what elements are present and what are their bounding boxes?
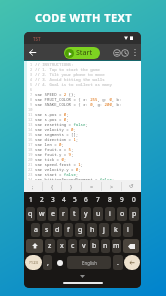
button[interactable]: Debug: [110, 46, 123, 59]
button[interactable]: 8: [104, 192, 116, 206]
button[interactable]: i: [105, 207, 115, 221]
button[interactable]: u: [93, 207, 103, 221]
staticText: n: [103, 241, 108, 251]
staticText: b: [92, 241, 97, 251]
staticText: 8: [108, 195, 112, 204]
staticText: 6: [84, 195, 88, 204]
staticText: 5: [30, 82, 33, 87]
button[interactable]: o: [117, 207, 127, 221]
button[interactable]: Backspace: [123, 239, 139, 253]
button[interactable]: h: [87, 223, 97, 237]
staticText: 22: [28, 167, 33, 172]
button[interactable]: m: [112, 239, 121, 253]
button[interactable]: 4: [58, 192, 69, 206]
button[interactable]: 9: [116, 192, 128, 206]
button[interactable]: x: [57, 239, 66, 253]
button[interactable]: ;: [24, 180, 42, 192]
button[interactable]: 1: [25, 192, 36, 206]
button[interactable]: l: [123, 223, 133, 237]
button[interactable]: s: [42, 223, 51, 237]
staticText: 18: [28, 147, 33, 152]
button[interactable]: w: [37, 207, 46, 221]
staticText: ,: [47, 258, 49, 268]
staticText: // 1. Tap to start the game: [35, 67, 100, 72]
staticText: 5: [73, 195, 77, 204]
button[interactable]: Shift: [26, 239, 43, 253]
button[interactable]: ↺: [122, 180, 141, 192]
button[interactable]: c: [68, 239, 77, 253]
button[interactable]: English: [67, 256, 111, 269]
staticText: >: [110, 183, 114, 190]
staticText: var segments = [];: [35, 132, 79, 137]
button[interactable]: t: [70, 207, 79, 221]
staticText: 14: [28, 127, 33, 132]
button[interactable]: q: [26, 207, 35, 221]
staticText: var start = false;: [35, 172, 79, 177]
button[interactable]: >: [102, 180, 121, 192]
button[interactable]: a: [31, 223, 40, 237]
button[interactable]: 2: [36, 192, 47, 206]
staticText: 1: [30, 62, 33, 67]
staticText: var velocity.y = 0;: [35, 167, 81, 172]
button[interactable]: b: [90, 239, 99, 253]
staticText: var FRUIT_COLOR = { r: 255, g: 0, b:: [35, 97, 122, 102]
staticText: 3: [30, 72, 33, 77]
staticText: // 3. Avoid hitting the walls: [35, 77, 105, 82]
staticText: 7: [96, 195, 100, 204]
button[interactable]: .: [113, 255, 123, 270]
button[interactable]: {: [43, 180, 61, 192]
staticText: v: [82, 241, 86, 251]
button[interactable]: e: [48, 207, 57, 221]
staticText: var fruit.y = 9;: [35, 152, 74, 157]
button[interactable]: k: [111, 223, 121, 237]
staticText: 2: [40, 195, 44, 204]
staticText: var len = 0;: [35, 142, 64, 147]
button[interactable]: 7: [92, 192, 104, 206]
staticText: // 2. Tilt your phone to move: [35, 72, 105, 77]
button[interactable]: =: [82, 180, 101, 192]
button[interactable]: n: [101, 239, 110, 253]
staticText: u: [96, 209, 101, 219]
button[interactable]: 3: [47, 192, 58, 206]
button[interactable]: 6: [80, 192, 92, 206]
button[interactable]: More options: [130, 45, 140, 60]
button[interactable]: ?123: [25, 255, 42, 270]
button[interactable]: Emoji: [53, 254, 66, 271]
staticText: c: [71, 241, 75, 251]
button[interactable]: d: [53, 223, 62, 237]
button[interactable]: ,: [43, 255, 52, 270]
staticText: p: [132, 209, 137, 219]
staticText: var tick = 0;: [35, 157, 67, 162]
button[interactable]: r: [59, 207, 68, 221]
staticText: var fruit.x = 5;: [35, 147, 74, 152]
button[interactable]: }: [62, 180, 81, 192]
staticText: ↺: [129, 183, 134, 189]
staticText: TST: [33, 36, 41, 42]
staticText: l: [127, 225, 129, 235]
button[interactable]: 0: [128, 192, 140, 206]
button[interactable]: 5: [69, 192, 80, 206]
staticText: var s.pos = 0;: [35, 117, 69, 122]
button[interactable]: p: [129, 207, 139, 221]
button[interactable]: Reset: [118, 46, 131, 59]
staticText: CODE WITH TEXT: [35, 10, 132, 25]
button[interactable]: Back: [26, 46, 39, 59]
button[interactable]: Start: [64, 47, 100, 59]
staticText: o: [120, 209, 125, 219]
staticText: 20: [28, 157, 33, 162]
button[interactable]: z: [45, 239, 55, 253]
staticText: var resetting = false;: [35, 122, 88, 127]
button[interactable]: f: [64, 223, 73, 237]
staticText: 2: [30, 67, 33, 72]
button[interactable]: y: [81, 207, 91, 221]
button[interactable]: v: [79, 239, 88, 253]
staticText: 9: [30, 102, 33, 107]
button[interactable]: g: [75, 223, 85, 237]
staticText: 15: [28, 132, 33, 137]
button[interactable]: j: [99, 223, 109, 237]
staticText: q: [28, 209, 33, 219]
button[interactable]: Enter: [124, 255, 140, 270]
staticText: {: [51, 183, 54, 190]
staticText: 17: [28, 142, 33, 147]
staticText: k: [114, 225, 118, 235]
